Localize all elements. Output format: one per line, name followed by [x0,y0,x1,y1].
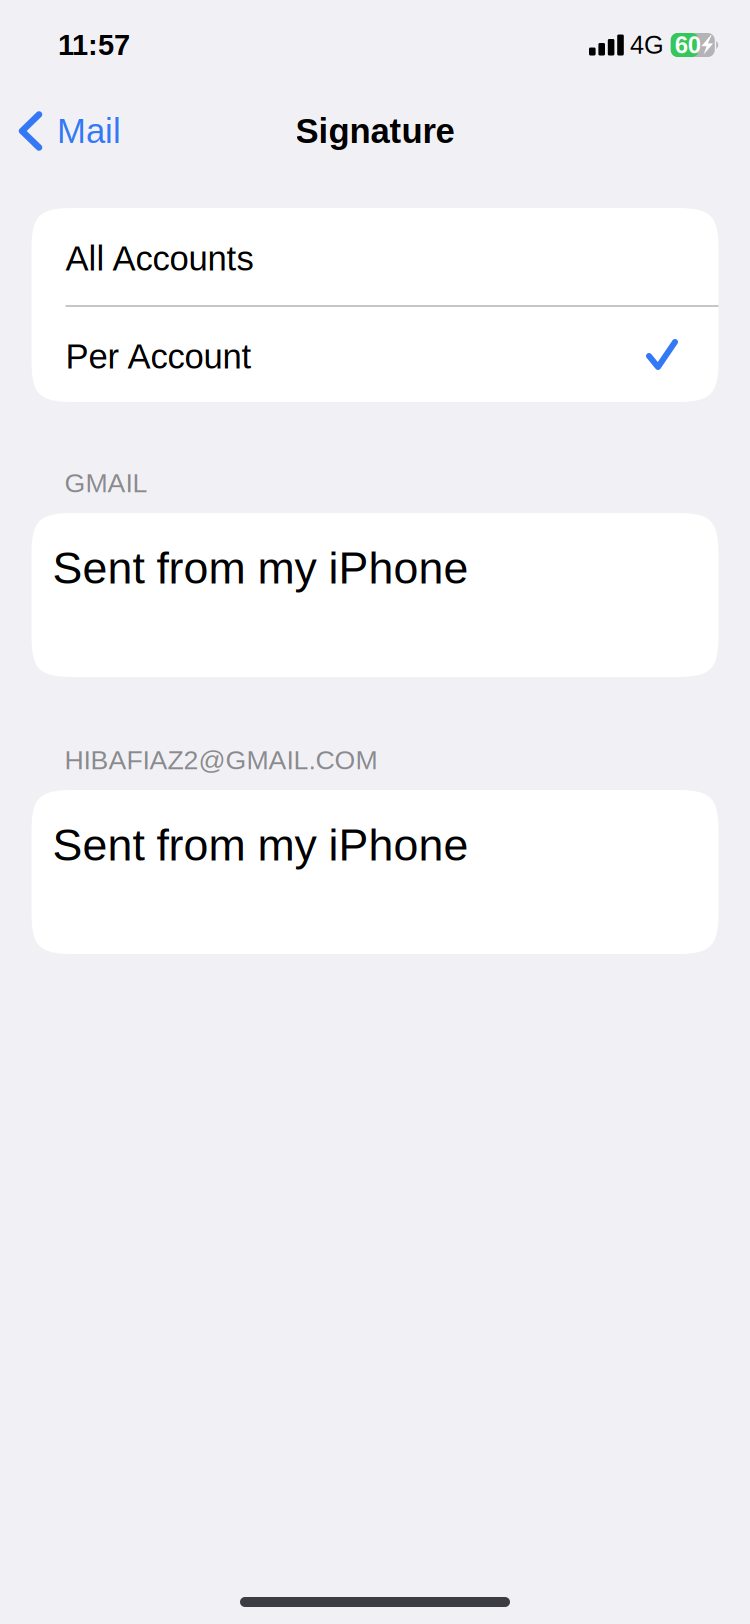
staticText: Signature [295,112,454,150]
button[interactable]: All Accounts [31,208,718,305]
button[interactable]: Per Account [31,307,718,402]
staticText: HIBAFIAZ2@GMAIL.COM [64,745,377,775]
staticText: Mail [57,112,121,150]
staticText: Sent from my iPhone [52,543,468,593]
staticText: 4G [630,31,664,59]
staticText: 11:57 [58,29,130,61]
staticText: GMAIL [64,468,147,498]
staticText: 60 [675,32,701,58]
button[interactable]: Sent from my iPhone [31,790,718,954]
staticText: Sent from my iPhone [52,820,468,870]
staticText: All Accounts [65,239,253,278]
button[interactable]: Mail [0,92,135,170]
staticText: Per Account [65,337,251,376]
button[interactable]: Sent from my iPhone [31,513,718,677]
